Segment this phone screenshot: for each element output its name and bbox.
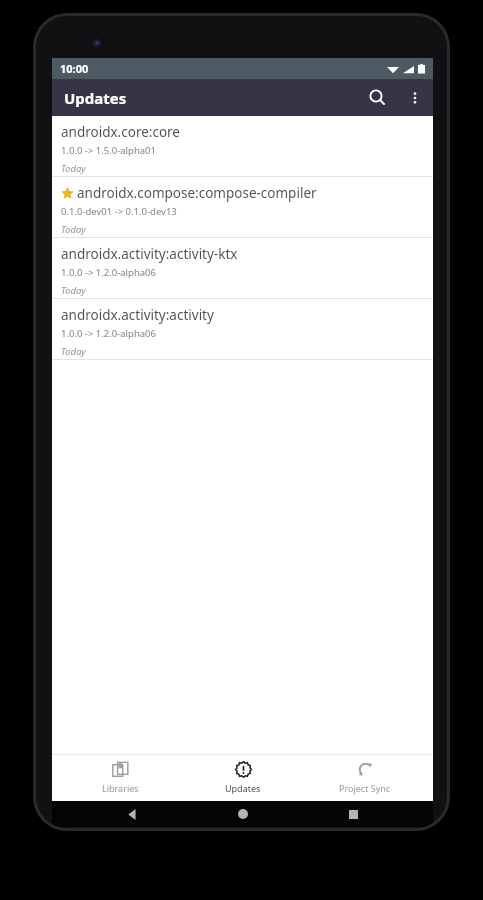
staticText: Libraries <box>102 782 139 794</box>
staticText: 0.1.0-dev01 -> 0.1.0-dev13 <box>61 205 177 218</box>
staticText: 1.0.0 -> 1.2.0-alpha06 <box>61 327 156 340</box>
button[interactable]: Updates <box>188 754 298 801</box>
button[interactable]: androidx.activity:activity <box>52 299 433 359</box>
button[interactable]: androidx.activity:activity-ktx <box>52 238 433 298</box>
button[interactable]: Search <box>359 79 396 116</box>
staticText: Updates <box>64 88 127 108</box>
button[interactable]: Back <box>102 801 162 827</box>
button[interactable]: androidx.compose:compose-compiler <box>52 177 433 237</box>
staticText: Today <box>61 223 86 236</box>
staticText: androidx.activity:activity <box>61 306 214 324</box>
staticText: Updates <box>225 782 261 794</box>
staticText: Today <box>61 345 86 358</box>
staticText: 1.0.0 -> 1.2.0-alpha06 <box>61 266 156 279</box>
staticText: androidx.activity:activity-ktx <box>61 245 238 263</box>
button[interactable]: androidx.core:core <box>52 116 433 176</box>
button[interactable]: Project Sync <box>310 754 420 801</box>
button[interactable]: Home <box>213 801 273 827</box>
staticText: Project Sync <box>339 782 391 794</box>
button[interactable]: Libraries <box>65 754 175 801</box>
button[interactable]: Recent apps <box>323 801 383 827</box>
staticText: 10:00 <box>60 61 89 76</box>
staticText: Today <box>61 284 86 297</box>
staticText: androidx.core:core <box>61 123 180 141</box>
staticText: androidx.compose:compose-compiler <box>77 184 317 202</box>
staticText: Today <box>61 162 86 175</box>
button[interactable]: More options <box>396 79 433 116</box>
staticText: 1.0.0 -> 1.5.0-alpha01 <box>61 144 156 157</box>
